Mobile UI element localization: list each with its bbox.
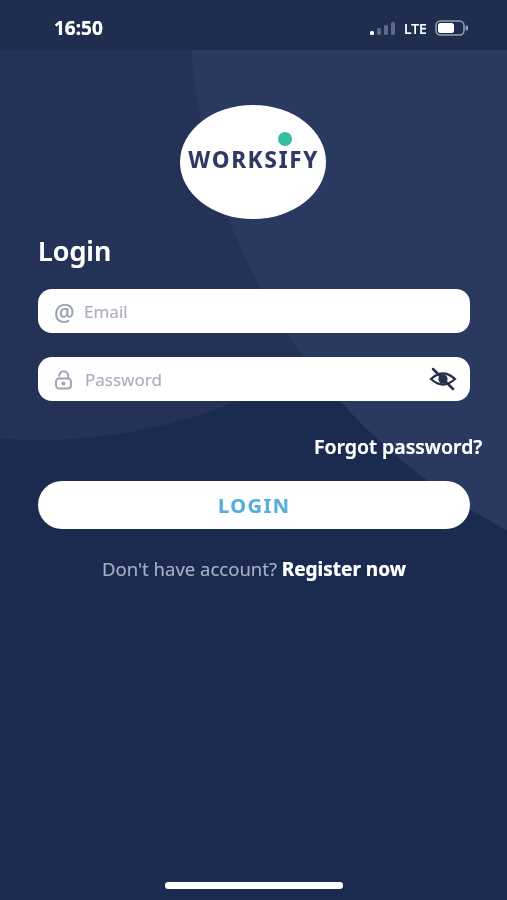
button[interactable]: @: [38, 289, 470, 333]
button[interactable]: Don't have account? Register now: [102, 556, 406, 582]
staticText: Password: [85, 368, 162, 391]
button[interactable]: LOGIN: [38, 481, 470, 529]
staticText: Email: [84, 300, 128, 323]
staticText: LTE: [404, 19, 427, 38]
staticText: Login: [38, 232, 112, 269]
staticText: LOGIN: [218, 492, 291, 519]
button[interactable]: Password: [38, 357, 470, 401]
staticText: WORKSIFY: [188, 144, 319, 175]
staticText: @: [54, 296, 75, 327]
button[interactable]: [421, 357, 465, 401]
button[interactable]: Forgot password?: [314, 433, 483, 460]
staticText: 16:50: [54, 15, 103, 41]
